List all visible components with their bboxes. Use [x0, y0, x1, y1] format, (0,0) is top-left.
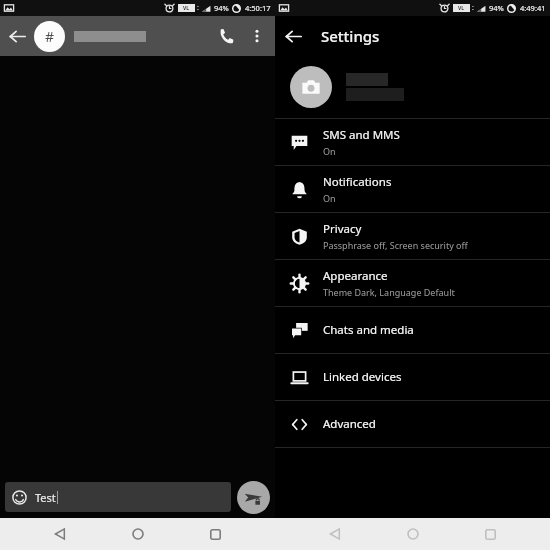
staticText: Linked devices — [323, 369, 402, 385]
staticText: 4:50:17 — [245, 3, 271, 13]
staticText: Notifications — [323, 174, 392, 190]
button[interactable]: Back — [317, 518, 353, 550]
button[interactable]: Notifications — [275, 166, 550, 212]
staticText: VL — [458, 5, 465, 12]
button[interactable]: Home — [395, 518, 431, 550]
button[interactable]: Send secure message — [237, 481, 270, 514]
staticText: Appearance — [323, 268, 388, 284]
staticText: 4:49:41 — [520, 3, 546, 13]
staticText: Advanced — [323, 416, 376, 432]
button[interactable]: More options — [243, 22, 271, 50]
button[interactable]: Recents — [472, 518, 508, 550]
staticText: Chats and media — [323, 322, 414, 338]
staticText: Privacy — [323, 221, 362, 237]
staticText: Theme Dark, Language Default — [323, 286, 455, 298]
button[interactable]: Advanced — [275, 401, 550, 447]
staticText: Passphrase off, Screen security off — [323, 239, 468, 251]
button[interactable]: SMS and MMS — [275, 119, 550, 165]
button[interactable]: Back — [42, 518, 78, 550]
staticText: SMS and MMS — [323, 127, 400, 143]
button[interactable]: Recents — [197, 518, 233, 550]
staticText: Settings — [321, 26, 380, 46]
staticText: : — [472, 3, 474, 13]
staticText: 94% — [489, 3, 504, 13]
staticText: : — [197, 3, 199, 13]
staticText: VL — [183, 5, 190, 12]
button[interactable]: Home — [120, 518, 156, 550]
button[interactable]: Privacy — [275, 213, 550, 259]
staticText: # — [45, 27, 55, 46]
button[interactable]: Call — [209, 19, 243, 53]
button[interactable]: Back — [0, 19, 34, 53]
staticText: On — [323, 145, 336, 157]
button[interactable]: Back — [275, 18, 311, 54]
staticText: Test — [35, 490, 56, 505]
button[interactable]: Test — [5, 482, 231, 512]
staticText: 94% — [214, 3, 229, 13]
button[interactable] — [275, 56, 550, 118]
button[interactable]: Linked devices — [275, 354, 550, 400]
button[interactable]: Chats and media — [275, 307, 550, 353]
button[interactable]: Appearance — [275, 260, 550, 306]
button[interactable]: # — [34, 21, 65, 52]
staticText: On — [323, 192, 336, 204]
